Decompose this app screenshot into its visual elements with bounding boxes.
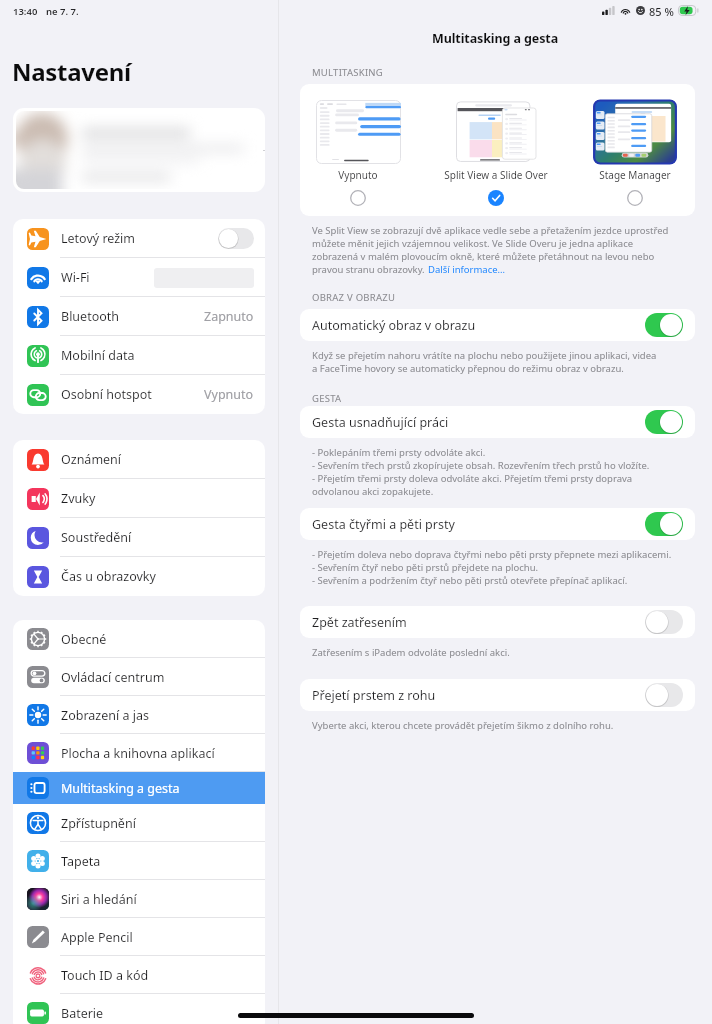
staticText: 85 % <box>649 4 674 17</box>
staticText: Osobní hotspot <box>61 386 152 403</box>
staticText: Baterie <box>61 1005 104 1022</box>
staticText: můžete měnit jejich vzájemnou velikost. … <box>312 237 634 250</box>
staticText: Ovládací centrum <box>61 669 165 686</box>
other: Wi-Fi <box>620 6 631 15</box>
staticText: Vyberte akci, kterou chcete provádět pře… <box>312 719 614 732</box>
staticText: MULTITASKING <box>312 66 383 79</box>
staticText: a FaceTime hovory se automaticky přepnou… <box>312 362 624 375</box>
staticText: Nastavení <box>12 55 131 88</box>
staticText: Když se přejetím nahoru vrátíte na ploch… <box>312 349 657 362</box>
staticText: Ve Split View se zobrazují dvě aplikace … <box>312 224 669 237</box>
staticText: 13:40 <box>13 5 38 18</box>
staticText: - Poklepáním třemi prsty odvoláte akci. <box>312 446 486 459</box>
button[interactable]: Split View a Slide Over <box>434 84 558 216</box>
button[interactable]: Touch ID a kód <box>13 956 265 994</box>
button[interactable]: Osobní hotspot <box>13 375 265 414</box>
button[interactable]: Apple ID, iCloud, Media a nákupy <box>13 108 265 192</box>
button[interactable]: Zpět zatřesením <box>300 606 695 638</box>
staticText: ne 7. 7. <box>46 5 79 18</box>
staticText: Zobrazení a jas <box>61 707 149 724</box>
staticText: Zvuky <box>61 490 96 507</box>
button[interactable]: Plocha a knihovna aplikací <box>13 734 265 772</box>
button[interactable]: Další informace… <box>428 263 506 276</box>
staticText: Čas u obrazovky <box>61 568 156 585</box>
staticText: Multitasking a gesta <box>61 780 180 797</box>
button[interactable]: Čas u obrazovky <box>13 557 265 596</box>
staticText: Apple Pencil <box>61 929 133 946</box>
staticText: Zapnuto <box>204 308 254 325</box>
button[interactable]: Zpřístupnění <box>13 804 265 842</box>
button[interactable]: Apple Pencil <box>13 918 265 956</box>
staticText: Stage Manager <box>599 168 671 182</box>
staticText: Přejetí prstem z rohu <box>312 687 436 704</box>
staticText: - Sevřením a podržením čtyř nebo pěti pr… <box>312 574 628 587</box>
button[interactable]: Mobilní data <box>13 336 265 375</box>
staticText: pravou stranu obrazovky. <box>312 263 428 276</box>
other: Baterie 85 %, nabíjí se <box>678 5 699 16</box>
staticText: Mobilní data <box>61 347 135 364</box>
staticText: OBRAZ V OBRAZU <box>312 291 396 304</box>
button[interactable]: Soustředění <box>13 518 265 557</box>
staticText: Zpět zatřesením <box>312 614 407 631</box>
staticText: Bluetooth <box>61 308 120 325</box>
button[interactable]: Gesta čtyřmi a pěti prsty <box>300 508 695 540</box>
staticText: Letový režim <box>61 230 136 247</box>
staticText: zobrazená v malém plovoucím okně, které … <box>312 250 655 263</box>
staticText: Obecné <box>61 631 107 648</box>
button[interactable]: Wi-Fi <box>13 258 265 297</box>
staticText: Tapeta <box>61 853 101 870</box>
button[interactable]: Oznámení <box>13 440 265 479</box>
button[interactable]: Gesta usnadňující práci <box>300 406 695 438</box>
button[interactable]: Vypnuto <box>300 84 420 216</box>
staticText: Zatřesením s iPadem odvoláte poslední ak… <box>312 646 510 659</box>
staticText: Split View a Slide Over <box>444 168 548 182</box>
other: Signál mobilní sítě <box>602 6 615 15</box>
staticText: - Sevřením třech prstů zkopírujete obsah… <box>312 459 650 472</box>
staticText: Další informace… <box>428 263 506 276</box>
staticText: GESTA <box>312 392 342 405</box>
button[interactable]: Přejetí prstem z rohu <box>300 679 695 711</box>
staticText: Plocha a knihovna aplikací <box>61 745 215 762</box>
button[interactable]: Obecné <box>13 620 265 658</box>
staticText: Multitasking a gesta <box>432 30 559 47</box>
button[interactable]: Bluetooth <box>13 297 265 336</box>
staticText: odvolanou akci zopakujete. <box>312 485 434 498</box>
staticText: - Přejetím třemi prsty doleva odvoláte a… <box>312 472 633 485</box>
button[interactable]: Automatický obraz v obrazu <box>300 309 695 341</box>
staticText: Touch ID a kód <box>61 967 149 984</box>
staticText: Gesta čtyřmi a pěti prsty <box>312 516 455 533</box>
staticText: - Sevřením čtyř nebo pěti prstů přejdete… <box>312 561 539 574</box>
button[interactable]: Baterie <box>13 994 265 1024</box>
button[interactable]: Letový režim <box>13 219 265 258</box>
button[interactable]: Ovládací centrum <box>13 658 265 696</box>
button[interactable]: Zobrazení a jas <box>13 696 265 734</box>
staticText: Soustředění <box>61 529 132 546</box>
button[interactable]: Multitasking a gesta <box>13 772 265 804</box>
staticText: Vypnuto <box>338 168 378 182</box>
staticText: Automatický obraz v obrazu <box>312 317 476 334</box>
other: Face ID <box>636 6 645 15</box>
staticText: Oznámení <box>61 451 122 468</box>
staticText: Siri a hledání <box>61 891 137 908</box>
staticText: Zpřístupnění <box>61 815 136 832</box>
button[interactable]: Siri a hledání <box>13 880 265 918</box>
staticText: Vypnuto <box>204 386 254 403</box>
button[interactable]: Stage Manager <box>573 84 695 216</box>
staticText: Wi-Fi <box>61 269 90 286</box>
staticText: Gesta usnadňující práci <box>312 414 449 431</box>
button[interactable]: Zvuky <box>13 479 265 518</box>
button[interactable]: Tapeta <box>13 842 265 880</box>
staticText: - Přejetím doleva nebo doprava čtyřmi ne… <box>312 548 672 561</box>
